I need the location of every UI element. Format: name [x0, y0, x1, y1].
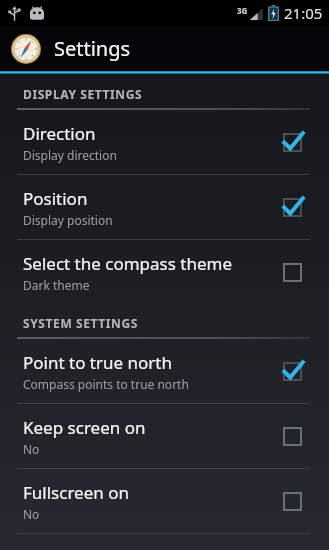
- staticText: Display direction: [23, 147, 117, 163]
- staticText: 21:05: [284, 3, 323, 23]
- staticText: DISPLAY SETTINGS: [23, 86, 143, 102]
- staticText: Settings: [54, 35, 131, 62]
- button[interactable]: Checked: [275, 125, 309, 159]
- button[interactable]: Unchecked: [275, 484, 309, 518]
- button[interactable]: Point to true north: [0, 339, 329, 403]
- button[interactable]: Keep screen on: [0, 404, 329, 468]
- button[interactable]: Unchecked: [275, 419, 309, 453]
- staticText: No: [23, 506, 40, 522]
- button[interactable]: Checked: [275, 190, 309, 224]
- button[interactable]: Checked: [275, 354, 309, 388]
- staticText: Keep screen on: [23, 416, 146, 439]
- staticText: Point to true north: [23, 351, 172, 374]
- staticText: Dark theme: [23, 277, 90, 293]
- staticText: Direction: [23, 122, 96, 145]
- button[interactable]: Select the compass theme: [0, 240, 329, 304]
- button[interactable]: Position: [0, 175, 329, 239]
- staticText: SYSTEM SETTINGS: [23, 315, 138, 331]
- staticText: Compass points to true north: [23, 376, 189, 392]
- button[interactable]: Fullscreen on: [0, 469, 329, 533]
- staticText: No: [23, 441, 40, 457]
- staticText: 3G: [237, 5, 248, 16]
- button[interactable]: Direction: [0, 110, 329, 174]
- staticText: Fullscreen on: [23, 481, 129, 504]
- staticText: Display position: [23, 212, 113, 228]
- button[interactable]: Settings: [0, 26, 329, 71]
- staticText: Select the compass theme: [23, 252, 233, 275]
- staticText: Position: [23, 187, 88, 210]
- button[interactable]: Unchecked: [275, 255, 309, 289]
